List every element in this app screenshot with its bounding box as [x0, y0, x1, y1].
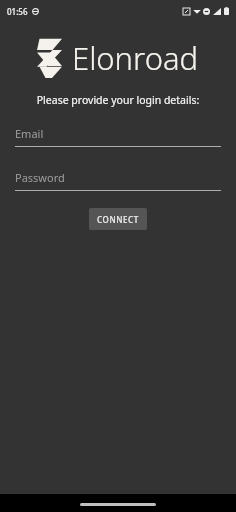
staticText: Email [15, 126, 44, 141]
other: Elonroad logo [37, 38, 62, 78]
button[interactable]: Password [15, 169, 221, 185]
button[interactable]: CONNECT [89, 208, 147, 230]
staticText: Please provide your login details: [0, 93, 236, 107]
staticText: 01:56 [7, 6, 28, 17]
button[interactable]: Email [15, 125, 221, 141]
staticText: CONNECT [97, 214, 139, 225]
staticText: Password [15, 170, 65, 185]
staticText: Elonroad [72, 37, 199, 79]
